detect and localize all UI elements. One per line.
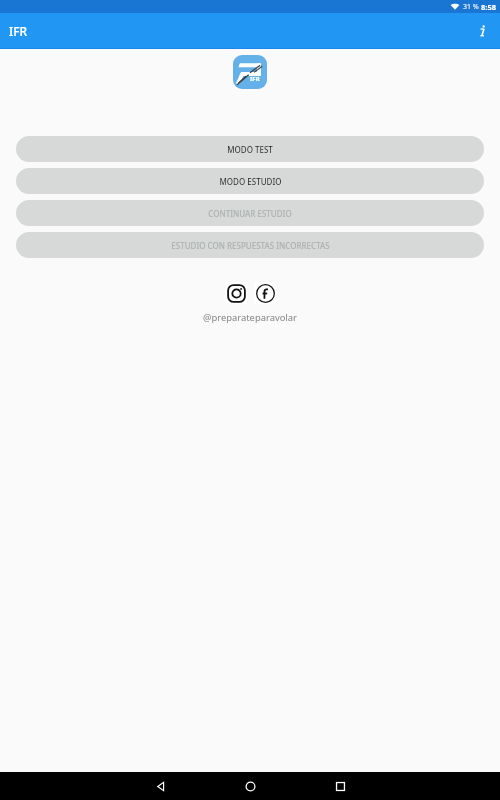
button[interactable]: Home xyxy=(236,772,264,800)
staticText: @preparateparavolar xyxy=(203,311,297,324)
staticText: IFR xyxy=(250,75,260,83)
button[interactable]: MODO ESTUDIO xyxy=(16,168,484,194)
button[interactable]: Instagram xyxy=(225,282,247,304)
button[interactable]: App logo xyxy=(233,55,267,89)
button[interactable]: Facebook xyxy=(254,282,276,304)
staticText: ESTUDIO CON RESPUESTAS INCORRECTAS xyxy=(171,240,330,251)
staticText: CONTINUAR ESTUDIO xyxy=(208,208,292,219)
button[interactable]: Info xyxy=(471,20,493,42)
staticText: MODO ESTUDIO xyxy=(219,176,282,187)
staticText: MODO TEST xyxy=(227,144,273,155)
button[interactable]: CONTINUAR ESTUDIO xyxy=(16,200,484,226)
staticText: IFR xyxy=(9,23,28,39)
staticText: 31 % xyxy=(463,2,479,12)
button[interactable]: ESTUDIO CON RESPUESTAS INCORRECTAS xyxy=(16,232,484,258)
staticText: 8:58 xyxy=(481,2,496,12)
button[interactable]: Back xyxy=(146,772,174,800)
button[interactable]: MODO TEST xyxy=(16,136,484,162)
button[interactable]: Recents xyxy=(326,772,354,800)
